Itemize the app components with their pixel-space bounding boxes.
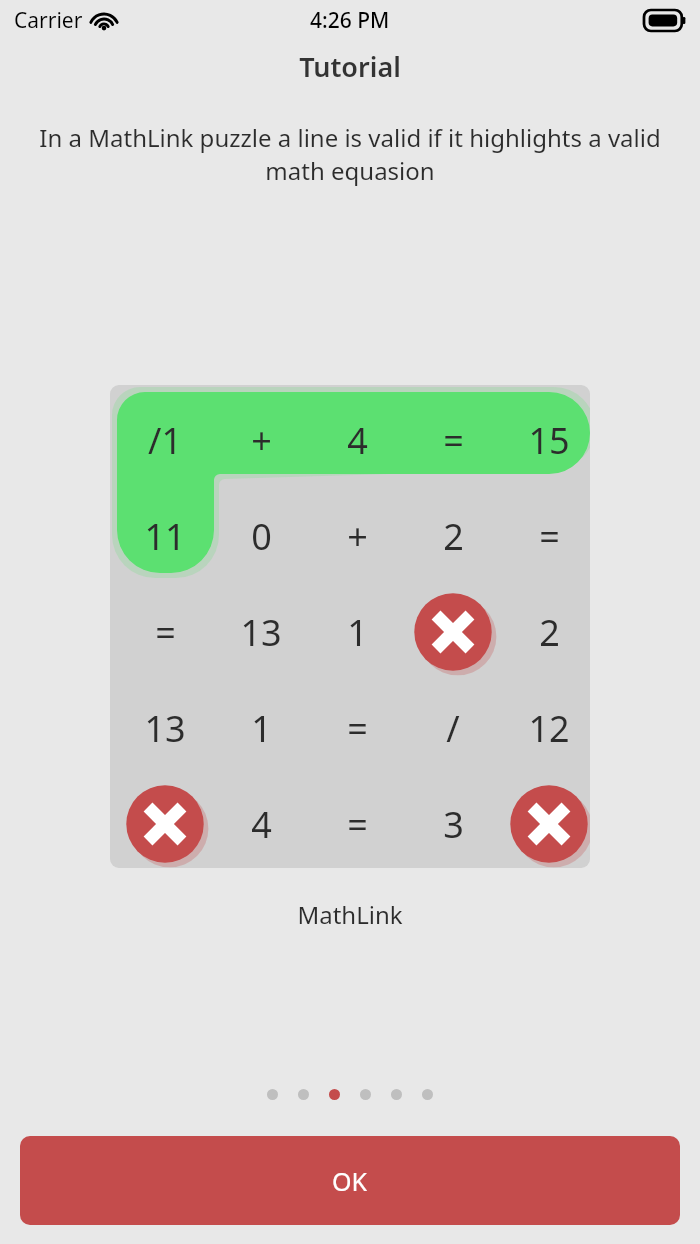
button[interactable]: 4	[213, 776, 309, 868]
staticText: MathLink	[0, 898, 700, 931]
staticText: 4	[251, 800, 272, 849]
button[interactable]: OK	[20, 1136, 680, 1225]
button[interactable]: Page 4	[360, 1089, 371, 1100]
button[interactable]: 2	[405, 488, 501, 584]
button[interactable]: 12	[501, 680, 590, 776]
button[interactable]: Page 6	[422, 1089, 433, 1100]
button[interactable]: /1	[117, 392, 213, 488]
button[interactable]: =	[309, 680, 405, 776]
button[interactable]: =	[501, 488, 590, 584]
staticText: Carrier	[14, 6, 83, 35]
button[interactable]: 13	[117, 680, 213, 776]
staticText: =	[539, 512, 560, 561]
staticText: =	[347, 800, 368, 849]
staticText: 13	[144, 704, 186, 753]
button[interactable]: +	[309, 488, 405, 584]
staticText: 2	[539, 608, 560, 657]
button[interactable]: =	[309, 776, 405, 868]
staticText: In a MathLink puzzle a line is valid if …	[30, 121, 670, 187]
button[interactable]: +	[213, 392, 309, 488]
staticText: 2	[443, 512, 464, 561]
button[interactable]: 3	[405, 776, 501, 868]
staticText: 0	[251, 512, 272, 561]
button[interactable]: 11	[117, 488, 213, 584]
button[interactable]: Blocked cell	[409, 588, 497, 676]
staticText: 15	[528, 416, 570, 465]
staticText: +	[251, 416, 272, 465]
button[interactable]: =	[117, 584, 213, 680]
staticText: 11	[144, 512, 186, 561]
staticText: 4:26 PM	[310, 6, 390, 35]
staticText: =	[347, 704, 368, 753]
staticText: +	[347, 512, 368, 561]
button[interactable]: /1	[110, 385, 590, 868]
staticText: 4	[347, 416, 368, 465]
button[interactable]: =	[405, 392, 501, 488]
staticText: 1	[251, 704, 272, 753]
staticText: 12	[528, 704, 570, 753]
staticText: 3	[443, 800, 464, 849]
button[interactable]: Blocked cell	[121, 780, 209, 868]
staticText: 1	[347, 608, 368, 657]
staticText: OK	[332, 1164, 368, 1198]
staticText: Tutorial	[0, 48, 700, 85]
button[interactable]: Page 2	[298, 1089, 309, 1100]
button[interactable]: Blocked cell	[505, 780, 590, 868]
staticText: =	[155, 608, 176, 657]
button[interactable]: 2	[501, 584, 590, 680]
button[interactable]: Page 1	[267, 1089, 278, 1100]
button[interactable]: 1	[309, 584, 405, 680]
button[interactable]: Page 3	[329, 1089, 340, 1100]
button[interactable]: Page 5	[391, 1089, 402, 1100]
staticText: /	[446, 704, 460, 753]
staticText: 13	[240, 608, 282, 657]
button[interactable]: 13	[213, 584, 309, 680]
button[interactable]: /	[405, 680, 501, 776]
button[interactable]: 1	[213, 680, 309, 776]
staticText: =	[443, 416, 464, 465]
button[interactable]: 15	[501, 392, 590, 488]
button[interactable]: 4	[309, 392, 405, 488]
button[interactable]: 0	[213, 488, 309, 584]
staticText: /1	[148, 416, 182, 465]
